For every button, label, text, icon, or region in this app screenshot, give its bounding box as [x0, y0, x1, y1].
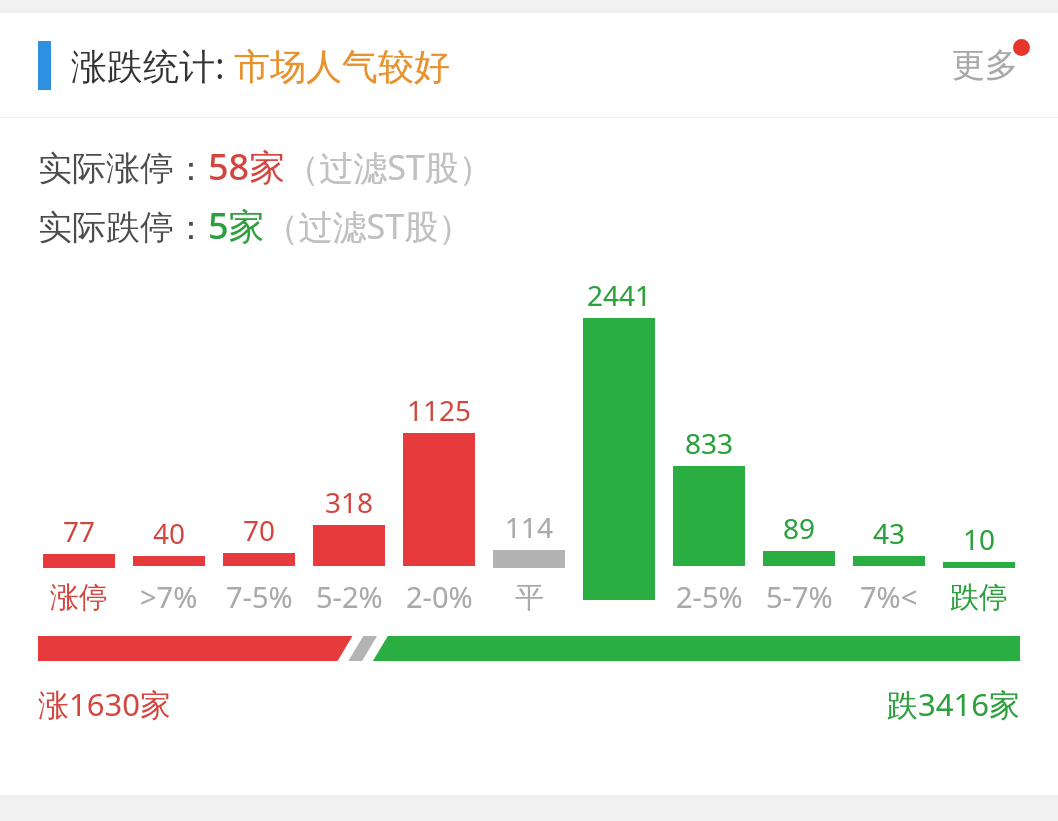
staticText: 77 [63, 512, 96, 550]
staticText: 833 [685, 424, 734, 462]
staticText: 114 [505, 508, 554, 546]
staticText: 70 [243, 511, 276, 549]
staticText: 10 [963, 520, 996, 558]
staticText: 1125 [407, 391, 472, 429]
button[interactable]: 更多 [952, 44, 1028, 86]
staticText: 跌3416家 [887, 683, 1020, 725]
staticText: 平 [515, 579, 544, 616]
staticText: 7-5% [226, 577, 293, 616]
staticText: 5-2% [316, 577, 383, 616]
staticText: 涨1630家 [38, 683, 171, 725]
staticText: 2441 [587, 276, 652, 314]
staticText: 涨停 [50, 579, 108, 616]
staticText: 跌停 [950, 579, 1008, 616]
staticText: 2-0% [406, 577, 473, 616]
staticText: 318 [325, 483, 374, 521]
staticText: 89 [783, 509, 816, 547]
staticText: 43 [873, 514, 906, 552]
staticText: >7% [140, 577, 198, 616]
staticText: 40 [153, 514, 186, 552]
staticText: 涨跌统计: 市场人气较好 [71, 41, 451, 90]
staticText: 5-7% [766, 577, 833, 616]
staticText: 更多 [952, 44, 1018, 86]
staticText: 实际跌停：5家（过滤ST股） [38, 201, 473, 250]
staticText: 实际涨停：58家（过滤ST股） [38, 142, 493, 191]
staticText: 2-5% [676, 577, 743, 616]
staticText: 7%< [860, 577, 918, 616]
